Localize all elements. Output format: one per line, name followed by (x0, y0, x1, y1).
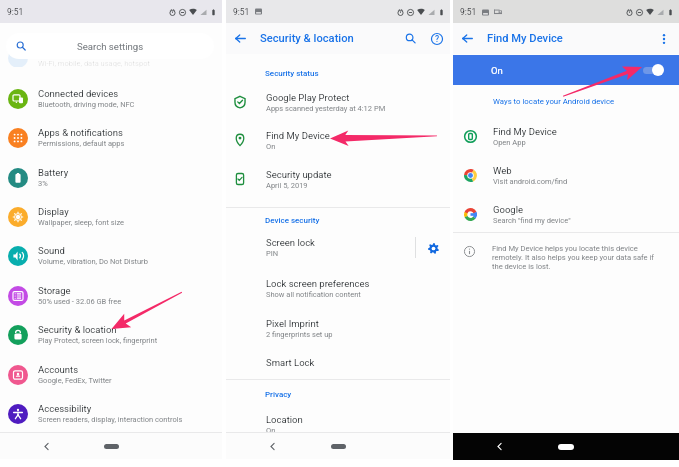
staticText: Display (38, 206, 69, 217)
staticText: Find My Device (266, 130, 330, 141)
staticText: Accessibility (38, 403, 92, 414)
staticText: PIN (266, 249, 279, 258)
staticText: April 5, 2019 (266, 181, 308, 190)
staticText: Volume, vibration, Do Not Disturb (38, 257, 148, 266)
staticText: On (491, 65, 503, 76)
staticText: Apps scanned yesterday at 4:12 PM (266, 104, 386, 113)
staticText: ? (435, 34, 440, 44)
staticText: Network & internet (38, 48, 117, 59)
button[interactable]: Security & location (0, 315, 222, 354)
button[interactable]: Display (0, 197, 222, 236)
staticText: Find My Device helps you locate this dev… (492, 244, 658, 271)
staticText: Device security (265, 216, 320, 225)
staticText: Permissions, default apps (38, 139, 125, 148)
button[interactable]: Accessibility (0, 394, 222, 433)
button[interactable]: Screen lock settings (416, 228, 450, 266)
staticText: Security & location (38, 324, 117, 335)
button[interactable]: Storage (0, 276, 222, 315)
button[interactable]: More options (658, 33, 670, 45)
staticText: Screen lock (266, 237, 315, 248)
staticText: Wallpaper, sleep, font size (38, 218, 125, 227)
staticText: Bluetooth, driving mode, NFC (38, 100, 135, 109)
button[interactable]: Google Play Protect (226, 83, 450, 121)
button[interactable]: Google (453, 195, 679, 233)
staticText: Screen readers, display, interaction con… (38, 415, 183, 424)
button[interactable]: Find My Device (453, 117, 679, 155)
staticText: Smart Lock (266, 357, 315, 368)
staticText: Find My Device (487, 32, 563, 45)
button[interactable]: Apps & notifications (0, 118, 222, 157)
staticText: Find My Device (493, 126, 557, 137)
staticText: Search "find my device" (493, 216, 571, 225)
button[interactable]: Back (495, 442, 504, 451)
staticText: Lock screen preferences (266, 278, 370, 289)
staticText: 9:51 (233, 7, 250, 17)
staticText: Play Protect, screen lock, fingerprint (38, 336, 158, 345)
button[interactable]: Battery (0, 158, 222, 197)
staticText: Google, FedEx, Twitter (38, 376, 112, 385)
staticText: Pixel Imprint (266, 318, 319, 329)
button[interactable]: Search (405, 33, 416, 44)
staticText: Security & location (260, 32, 354, 45)
button[interactable]: Web (453, 156, 679, 194)
staticText: Wi-Fi, mobile, data usage, hotspot (38, 59, 150, 68)
button[interactable]: Screen lock (226, 228, 415, 266)
button[interactable]: Security update (226, 160, 450, 198)
staticText: On (266, 426, 276, 435)
staticText: Privacy (265, 390, 292, 399)
staticText: Web (493, 165, 512, 176)
staticText: Google Play Protect (266, 92, 350, 103)
button[interactable]: Help (431, 33, 443, 45)
button[interactable]: Smart Lock (226, 345, 450, 379)
button[interactable]: Pixel Imprint (226, 311, 450, 345)
button[interactable]: Back (461, 32, 474, 45)
staticText: Connected devices (38, 88, 119, 99)
staticText: 3% (38, 179, 48, 188)
staticText: Ways to locate your Android device (493, 97, 615, 106)
staticText: Battery (38, 167, 69, 178)
button[interactable]: Home (104, 444, 119, 449)
button[interactable]: Find My Device (226, 121, 450, 159)
button[interactable]: Lock screen preferences (226, 271, 450, 305)
staticText: Security update (266, 169, 332, 180)
button[interactable]: Sound (0, 236, 222, 275)
button[interactable]: Location (226, 407, 450, 441)
button[interactable]: Home (558, 444, 574, 450)
staticText: 2 fingerprints set up (266, 330, 333, 339)
button[interactable]: Accounts (0, 355, 222, 394)
staticText: 9:51 (7, 7, 24, 17)
button[interactable]: Connected devices (0, 79, 222, 118)
staticText: Google (493, 204, 523, 215)
button[interactable]: Home (331, 444, 346, 449)
staticText: 9:51 (460, 7, 477, 17)
staticText: Open App (493, 138, 526, 147)
button[interactable]: Back (42, 442, 51, 451)
staticText: Visit android.com/find (493, 177, 568, 186)
staticText: Apps & notifications (38, 127, 123, 138)
staticText: On (266, 142, 276, 151)
staticText: Search settings (77, 41, 144, 52)
button[interactable]: On (453, 55, 679, 85)
staticText: Sound (38, 245, 65, 256)
button[interactable]: Search settings (6, 33, 214, 59)
button[interactable]: Back (268, 442, 277, 451)
staticText: Show all notification content (266, 290, 361, 299)
staticText: 50% used - 32.06 GB free (38, 297, 122, 306)
staticText: Security status (265, 69, 319, 78)
staticText: Accounts (38, 364, 79, 375)
staticText: Location (266, 414, 303, 425)
staticText: Storage (38, 285, 71, 296)
button[interactable]: Back (234, 32, 247, 45)
